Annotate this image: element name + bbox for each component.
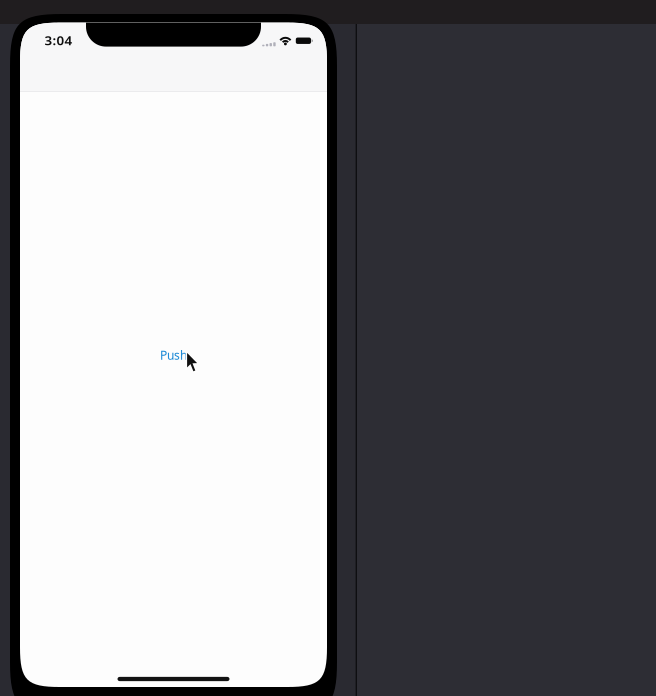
staticText: Push [160, 347, 187, 363]
staticText: 3:04 [44, 31, 72, 49]
button[interactable]: Push [160, 347, 187, 363]
